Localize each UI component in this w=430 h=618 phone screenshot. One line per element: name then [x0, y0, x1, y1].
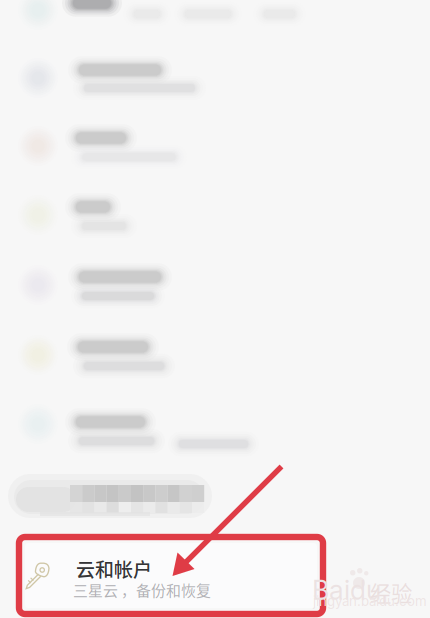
staticText: 经验: [370, 577, 412, 608]
staticText: 云和帐户: [76, 555, 152, 582]
staticText: Baidu: [312, 574, 381, 606]
staticText: 三星云 ，备份和恢复: [73, 579, 211, 601]
button[interactable]: 云和帐户: [0, 0, 430, 618]
staticText: jingyan.baidu.com: [313, 593, 427, 609]
